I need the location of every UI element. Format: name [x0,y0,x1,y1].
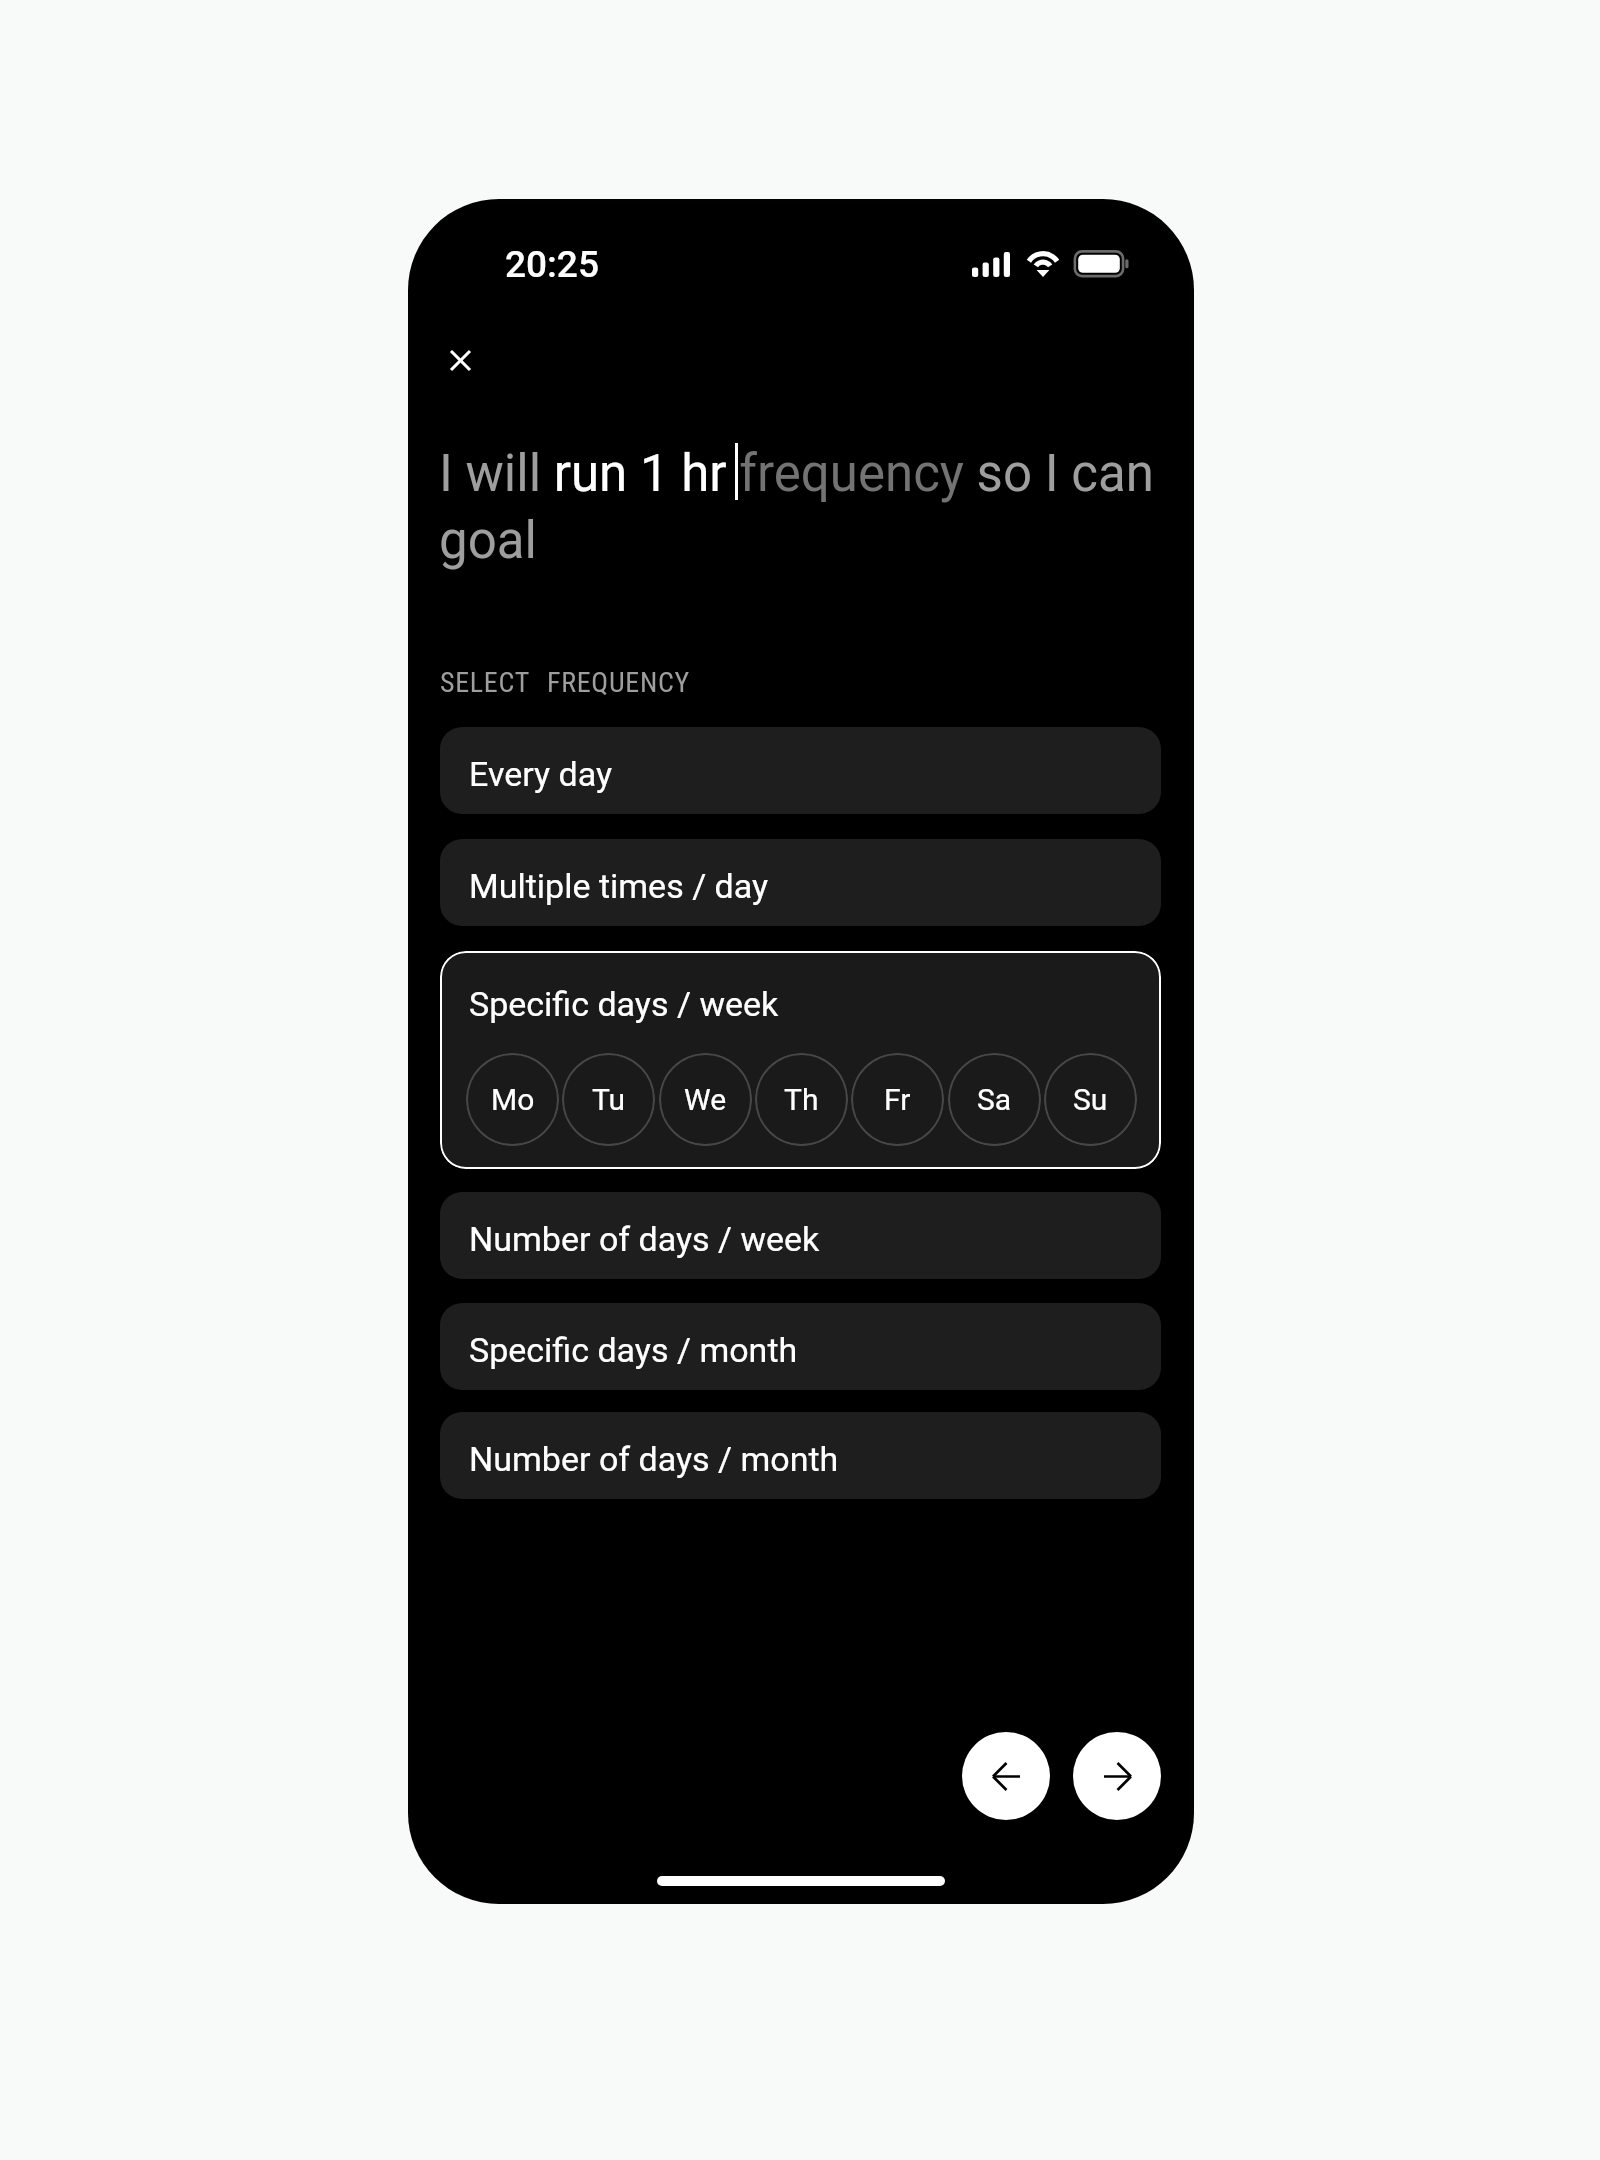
staticText: Su [1073,1082,1108,1117]
staticText: I will run 1 hr frequency so I can goal [439,444,1166,570]
staticText: Th [784,1082,819,1117]
staticText: Fr [884,1082,911,1117]
button[interactable]: Su [1044,1053,1137,1146]
staticText: Multiple times / day [469,866,769,906]
staticText: Specific days / week [469,984,779,1024]
button[interactable]: Number of days / month [440,1412,1161,1499]
staticText: Every day [469,754,613,794]
staticText: Mo [491,1082,535,1117]
button[interactable]: Fr [851,1053,944,1146]
staticText: Sa [977,1082,1012,1117]
button[interactable]: Every day [440,727,1161,814]
staticText: Number of days / month [469,1439,839,1479]
button[interactable]: Sa [948,1053,1041,1146]
button[interactable]: Tu [562,1053,655,1146]
button[interactable]: Multiple times / day [440,839,1161,926]
staticText: Specific days / month [469,1330,798,1370]
button[interactable]: We [659,1053,752,1146]
button[interactable]: Specific days / week [440,951,1161,1169]
staticText: FREQUENCY [547,666,690,699]
button[interactable]: Next [1073,1732,1161,1820]
staticText: SELECT [440,666,530,699]
button[interactable]: Back [962,1732,1050,1820]
button[interactable]: Specific days / month [440,1303,1161,1390]
staticText: Tu [592,1082,626,1117]
button[interactable]: Number of days / week [440,1192,1161,1279]
button[interactable]: Close [426,326,494,394]
staticText: 20:25 [505,243,599,286]
button[interactable]: Mo [466,1053,559,1146]
staticText: We [684,1082,727,1117]
staticText: Number of days / week [469,1219,820,1259]
button[interactable]: Th [755,1053,848,1146]
